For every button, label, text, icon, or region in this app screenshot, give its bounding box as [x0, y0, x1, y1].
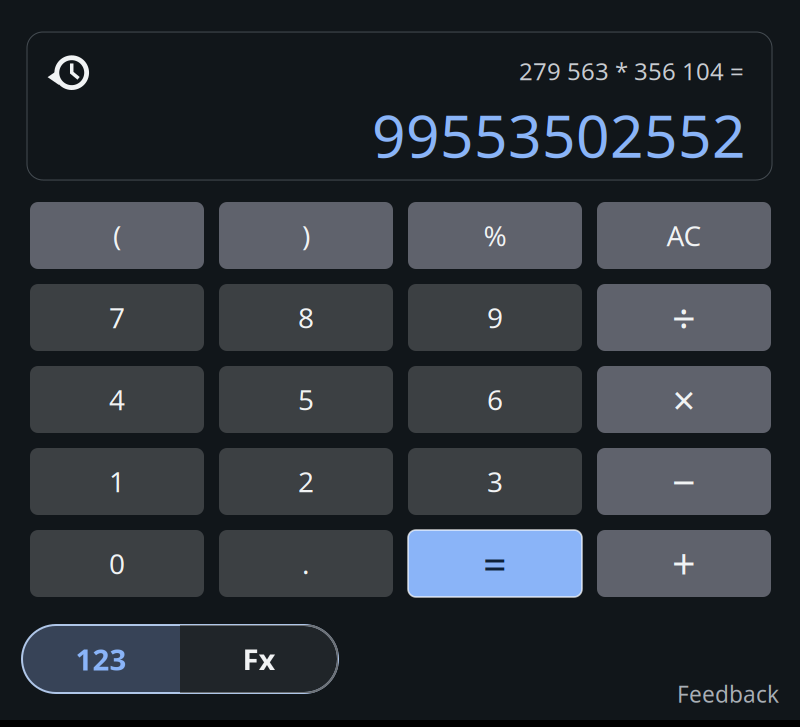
- staticText: (: [113, 217, 121, 254]
- button[interactable]: %: [408, 202, 582, 269]
- button[interactable]: ÷: [597, 284, 771, 351]
- staticText: 9: [487, 299, 503, 336]
- staticText: −: [672, 454, 696, 509]
- button[interactable]: +: [597, 530, 771, 597]
- button[interactable]: −: [597, 448, 771, 515]
- staticText: Feedback: [677, 679, 779, 709]
- staticText: %: [483, 217, 506, 254]
- staticText: 4: [109, 381, 125, 418]
- button[interactable]: 7: [30, 284, 204, 351]
- button[interactable]: 4: [30, 366, 204, 433]
- button[interactable]: 1: [30, 448, 204, 515]
- staticText: 5: [298, 381, 314, 418]
- staticText: 0: [109, 545, 125, 582]
- button[interactable]: 5: [219, 366, 393, 433]
- button[interactable]: 8: [219, 284, 393, 351]
- staticText: 7: [109, 299, 125, 336]
- staticText: 99553502552: [372, 96, 746, 174]
- button[interactable]: 2: [219, 448, 393, 515]
- button[interactable]: =: [408, 530, 582, 597]
- staticText: 2: [298, 463, 314, 500]
- button[interactable]: AC: [597, 202, 771, 269]
- button[interactable]: .: [219, 530, 393, 597]
- staticText: =: [483, 536, 507, 591]
- staticText: 6: [487, 381, 503, 418]
- button[interactable]: (: [30, 202, 204, 269]
- staticText: .: [302, 545, 310, 582]
- staticText: ÷: [672, 290, 696, 345]
- button[interactable]: 0: [30, 530, 204, 597]
- staticText: 8: [298, 299, 314, 336]
- staticText: AC: [666, 217, 701, 254]
- button[interactable]: Feedback: [677, 678, 779, 710]
- staticText: ): [302, 217, 310, 254]
- staticText: +: [672, 536, 696, 591]
- button[interactable]: History: [45, 40, 93, 96]
- staticText: Fx: [242, 639, 275, 678]
- staticText: 1: [109, 463, 125, 500]
- button[interactable]: 123: [22, 625, 180, 693]
- staticText: ×: [672, 373, 695, 426]
- staticText: 3: [487, 463, 503, 500]
- button[interactable]: Fx: [180, 625, 338, 693]
- staticText: 279 563 * 356 104 =: [519, 55, 744, 87]
- button[interactable]: 3: [408, 448, 582, 515]
- staticText: 123: [75, 639, 126, 678]
- button[interactable]: 9: [408, 284, 582, 351]
- button[interactable]: 6: [408, 366, 582, 433]
- button[interactable]: ): [219, 202, 393, 269]
- button[interactable]: ×: [597, 366, 771, 433]
